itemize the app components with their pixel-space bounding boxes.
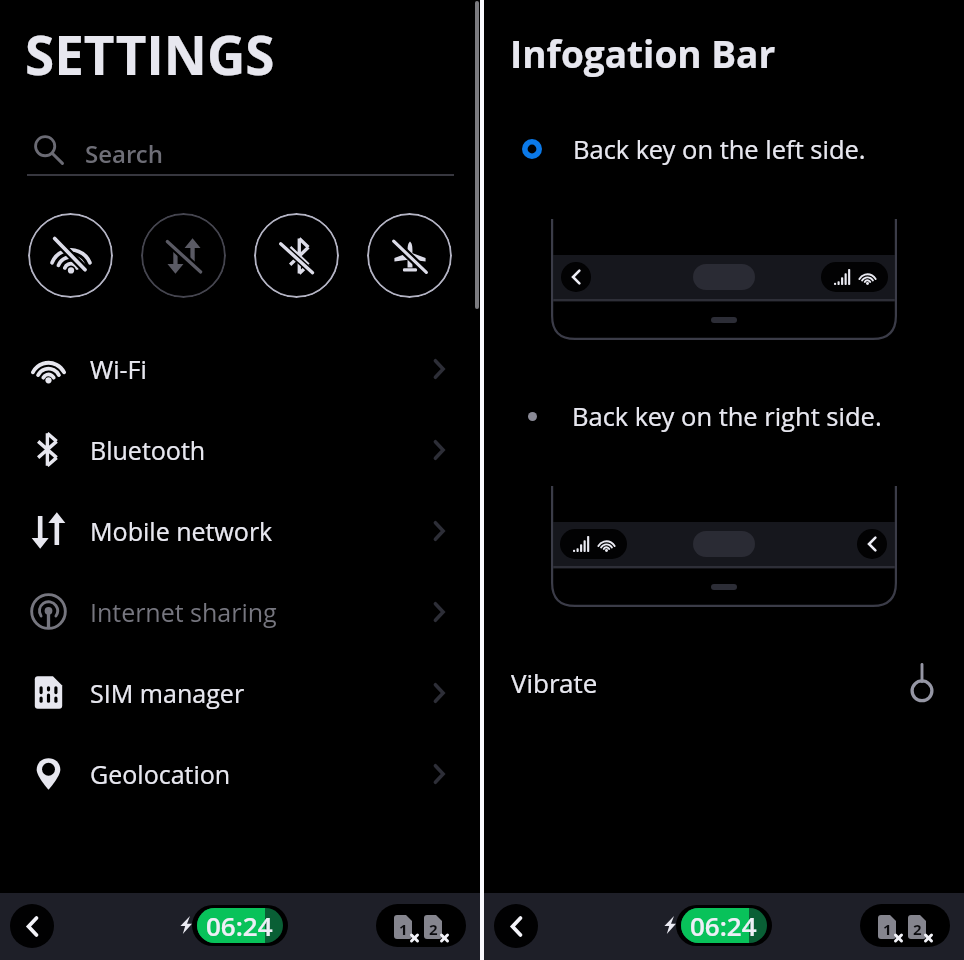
button[interactable]: Battery 06:24: [192, 905, 288, 946]
button[interactable]: Bluetooth: [0, 409, 480, 490]
staticText: 2: [429, 919, 438, 939]
staticText: Vibrate: [511, 665, 598, 700]
button[interactable]: Back: [10, 904, 54, 948]
staticText: Back key on the left side.: [573, 132, 866, 167]
staticText: Mobile network: [90, 514, 273, 548]
button[interactable]: SIM manager: [0, 652, 480, 733]
staticText: Back key on the right side.: [572, 399, 882, 434]
button[interactable]: Internet sharing: [0, 571, 480, 652]
staticText: 2: [913, 919, 922, 939]
staticText: Geolocation: [90, 757, 231, 791]
staticText: Search: [85, 137, 163, 170]
staticText: 1: [399, 919, 408, 939]
button[interactable]: Back key on the left side.: [484, 128, 964, 170]
button[interactable]: Back: [494, 904, 538, 948]
staticText: 06:24: [206, 908, 273, 943]
button[interactable]: Battery 06:24: [676, 905, 772, 946]
button[interactable]: Mobile data off: [141, 213, 226, 298]
staticText: SIM manager: [90, 676, 245, 710]
button[interactable]: SIM cards disabled: [860, 904, 950, 947]
button[interactable]: Mobile network: [0, 490, 480, 571]
button[interactable]: Airplane mode off: [367, 213, 452, 298]
staticText: Bluetooth: [90, 433, 206, 467]
button[interactable]: Wi-Fi off: [28, 213, 113, 298]
staticText: 06:24: [690, 908, 757, 943]
staticText: SETTINGS: [25, 18, 275, 90]
button[interactable]: Vibrate: [484, 647, 964, 717]
button[interactable]: SIM cards disabled: [376, 904, 466, 947]
button[interactable]: Back key on the right side.: [484, 395, 964, 437]
staticText: Infogation Bar: [510, 28, 776, 78]
button[interactable]: Geolocation: [0, 733, 480, 814]
staticText: 1: [883, 919, 892, 939]
button[interactable]: Bluetooth off: [254, 213, 339, 298]
staticText: Wi-Fi: [90, 352, 147, 386]
button[interactable]: Wi-Fi: [0, 328, 480, 409]
button[interactable]: Search: [27, 128, 454, 176]
staticText: Internet sharing: [90, 595, 277, 629]
